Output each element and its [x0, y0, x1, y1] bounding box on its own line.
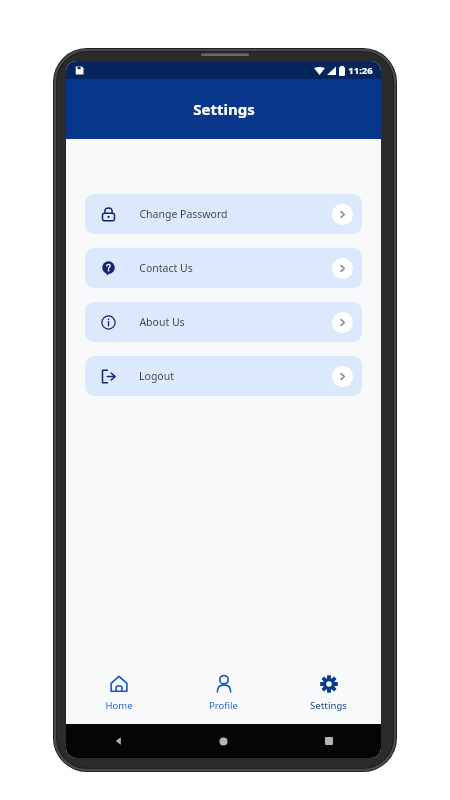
staticText: Profile	[209, 699, 238, 712]
staticText: Logout	[139, 369, 174, 383]
staticText: Home	[105, 699, 133, 712]
button[interactable]: Change Password	[85, 194, 362, 234]
staticText: Change Password	[139, 207, 228, 221]
staticText: About Us	[139, 315, 185, 329]
staticText: 11:26	[348, 64, 373, 77]
staticText: Settings	[193, 99, 255, 119]
button[interactable]: About Us	[85, 302, 362, 342]
button[interactable]: Settings	[276, 662, 381, 724]
button[interactable]: Home	[66, 662, 171, 724]
staticText: Contact Us	[139, 261, 193, 275]
button[interactable]: Profile	[171, 662, 276, 724]
button[interactable]: Contact Us	[85, 248, 362, 288]
button[interactable]: Logout	[85, 356, 362, 396]
staticText: Settings	[310, 699, 347, 712]
